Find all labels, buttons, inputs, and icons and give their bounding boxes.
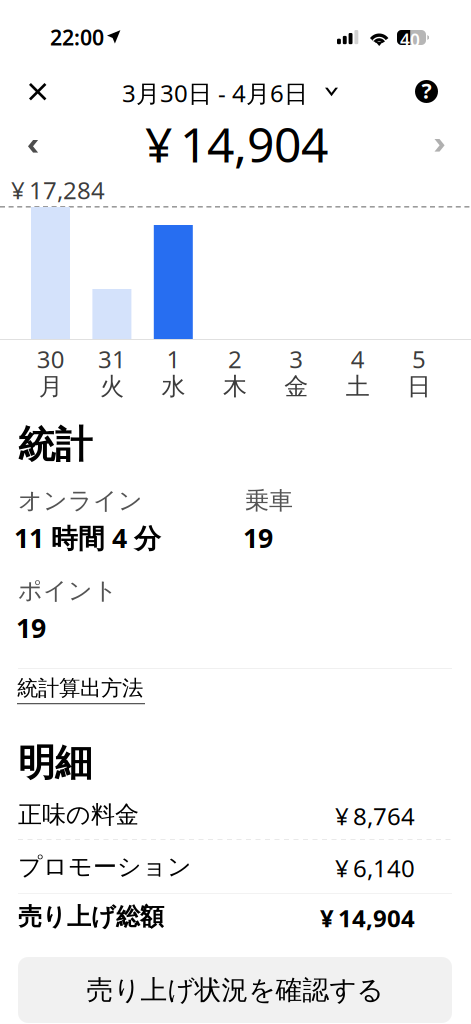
staticText: 40	[400, 28, 420, 51]
staticText: 30	[37, 343, 65, 375]
staticText: ¥ 8,764	[335, 800, 415, 832]
staticText: 金	[284, 372, 308, 401]
staticText: 火	[100, 372, 124, 401]
staticText: 5	[412, 343, 426, 375]
staticText: ¥ 14,904	[145, 112, 328, 176]
staticText: 正味の料金	[18, 800, 139, 829]
staticText: ポイント	[18, 576, 118, 605]
staticText: 31	[98, 343, 126, 375]
staticText: 19	[16, 610, 46, 645]
staticText: 売り上げ総額	[18, 902, 164, 931]
staticText: 木	[223, 372, 247, 401]
staticText: 売り上げ状況を確認する	[86, 974, 383, 1006]
staticText: 統計	[18, 422, 92, 468]
button[interactable]: Close	[29, 83, 75, 127]
staticText: 明細	[18, 740, 92, 786]
staticText: ¥ 14,904	[320, 902, 415, 934]
staticText: 水	[161, 372, 185, 401]
staticText: ?	[421, 76, 431, 105]
button[interactable]: 統計算出方法	[17, 675, 145, 702]
staticText: ¥ 17,284	[11, 174, 105, 206]
button[interactable]: 3月30日 - 4月6日	[122, 77, 334, 103]
staticText: ¥ 6,140	[335, 852, 415, 884]
staticText: 22:00	[50, 23, 104, 51]
staticText: 3月30日 - 4月6日	[122, 77, 308, 109]
staticText: 1	[166, 343, 180, 375]
button[interactable]: Help	[415, 80, 438, 103]
staticText: 3	[289, 343, 303, 375]
staticText: 土	[346, 372, 370, 401]
staticText: プロモーション	[18, 852, 192, 881]
staticText: 19	[243, 520, 273, 555]
staticText: 11 時間 4 分	[14, 520, 161, 555]
staticText: オンライン	[18, 486, 143, 515]
button[interactable]: Next week	[437, 139, 471, 173]
staticText: 日	[407, 372, 431, 401]
staticText: 2	[228, 343, 242, 375]
staticText: 4	[351, 343, 365, 375]
staticText: 乗車	[245, 486, 293, 515]
button[interactable]: Previous week	[28, 140, 68, 174]
button[interactable]: 売り上げ状況を確認する	[18, 957, 452, 1023]
staticText: 統計算出方法	[17, 675, 143, 701]
staticText: 月	[39, 372, 63, 401]
